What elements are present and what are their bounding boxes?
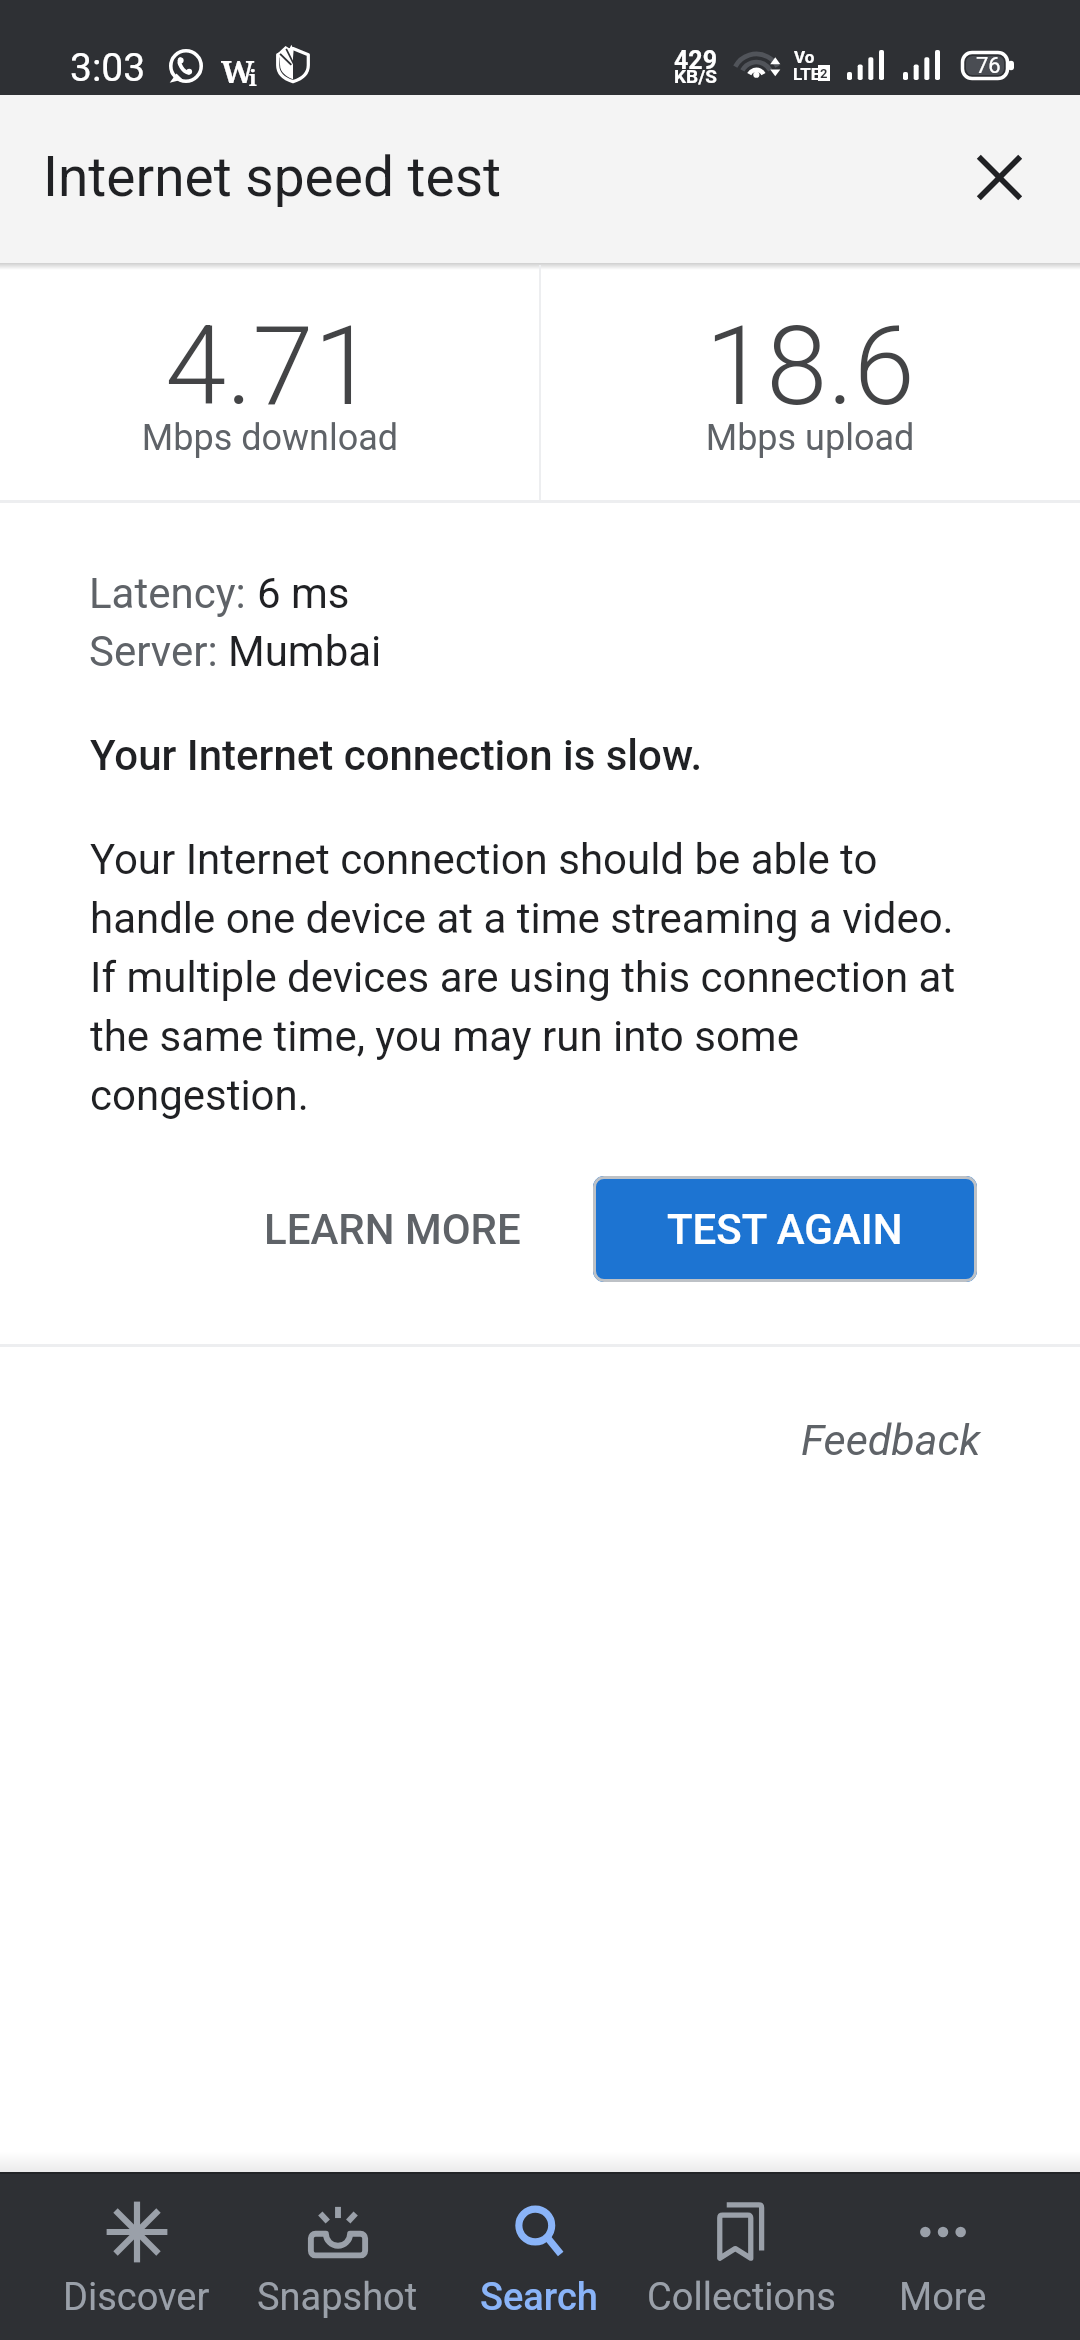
staticText: W [221,50,255,92]
staticText: Mumbai [228,627,382,676]
staticText: 2 [820,66,828,81]
button[interactable]: Snapshot [237,2172,438,2340]
button[interactable]: Discover [36,2172,237,2340]
button[interactable]: Feedback [801,1415,981,1465]
staticText: More [899,2275,987,2320]
staticText: Collections [647,2275,836,2320]
staticText: Latency: [89,569,257,618]
button[interactable]: More [842,2172,1044,2340]
staticText: 4.71 [0,302,540,431]
staticText: 429 [674,48,718,74]
staticText: 76 [976,53,1001,79]
staticText: Search [480,2275,598,2320]
button[interactable]: TEST AGAIN [593,1176,977,1282]
staticText: 3:03 [70,45,146,91]
staticText: TEST AGAIN [667,1205,903,1254]
staticText: LEARN MORE [264,1205,521,1254]
staticText: Discover [63,2275,210,2320]
staticText: LTE [793,66,821,84]
staticText: 18.6 [540,302,1080,431]
staticText: Internet speed test [43,145,502,209]
staticText: Mbps download [0,417,540,459]
staticText: i [249,62,257,92]
staticText: Mbps upload [540,417,1080,459]
staticText: Server: [89,627,228,676]
staticText: Snapshot [257,2275,418,2320]
button[interactable]: Collections [640,2172,842,2340]
staticText: Vo [794,49,815,67]
staticText: Your Internet connection should be able … [90,827,980,1122]
button[interactable]: Search [438,2172,640,2340]
staticText: 6 ms [257,569,350,618]
staticText: KB/S [674,67,717,87]
button[interactable]: Close [951,129,1047,225]
staticText: Your Internet connection is slow. [90,731,703,780]
button[interactable]: LEARN MORE [230,1176,555,1282]
